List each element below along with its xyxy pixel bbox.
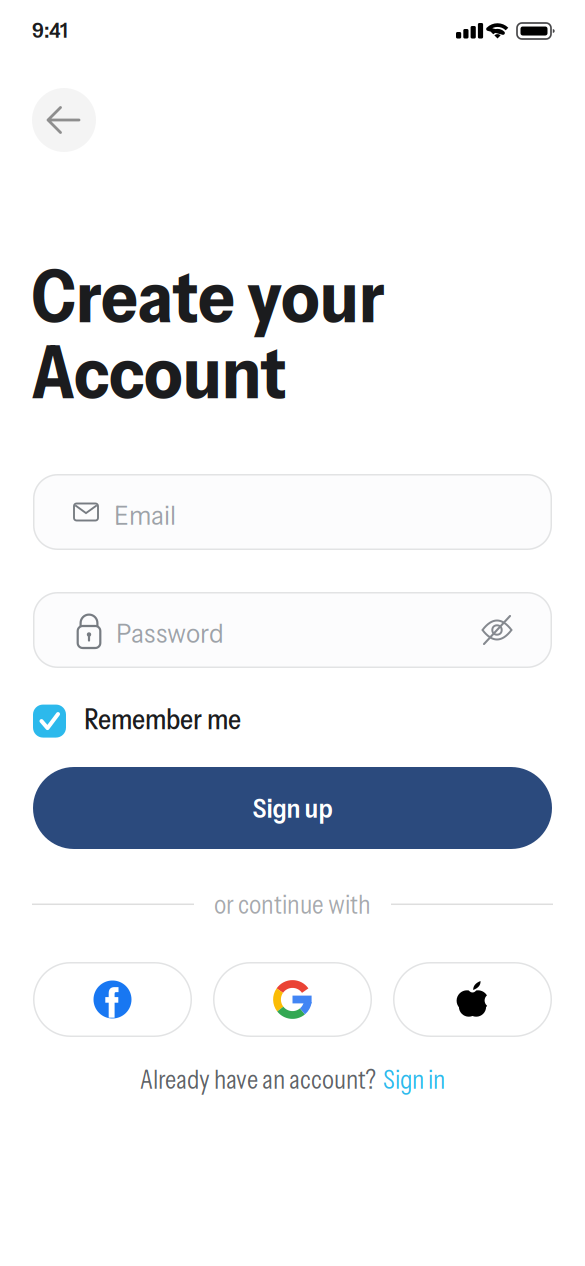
button[interactable]: Continue with Apple: [393, 962, 552, 1037]
staticText: 9:41: [32, 17, 68, 43]
staticText: Remember me: [84, 702, 241, 736]
button[interactable]: Back: [32, 88, 96, 152]
button[interactable]: Continue with Google: [213, 962, 372, 1037]
button[interactable]: Continue with Facebook: [33, 962, 192, 1037]
staticText: Sign in: [383, 1063, 445, 1095]
staticText: Password: [116, 616, 224, 650]
button[interactable]: Password: [33, 592, 552, 668]
staticText: Already have an account?: [140, 1063, 376, 1095]
staticText: Create your: [31, 251, 385, 340]
button[interactable]: Email: [33, 474, 552, 550]
button[interactable]: Remember me: [33, 704, 241, 738]
staticText: or continue with: [214, 888, 371, 920]
staticText: Account: [31, 327, 287, 416]
button[interactable]: Sign up: [33, 767, 552, 849]
button[interactable]: Sign in: [383, 1063, 445, 1095]
staticText: Sign up: [252, 791, 332, 825]
staticText: Email: [114, 498, 176, 532]
button[interactable]: Show password: [482, 614, 512, 646]
